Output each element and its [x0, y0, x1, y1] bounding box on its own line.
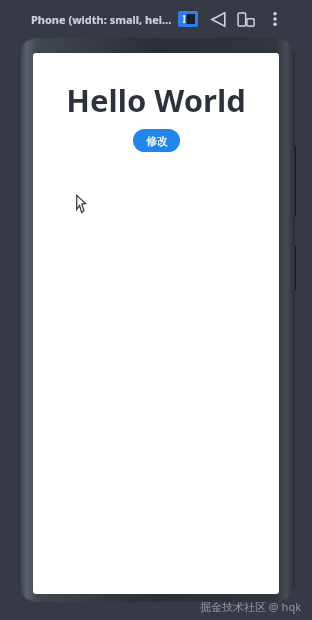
- staticText: 掘金技术社区 @ hqk: [200, 599, 302, 614]
- staticText: Phone (width: small, hei…: [31, 12, 172, 27]
- button[interactable]: Device settings: [234, 7, 258, 31]
- button[interactable]: More options: [265, 9, 285, 29]
- staticText: Hello World: [66, 79, 246, 121]
- button[interactable]: Flip orientation: [207, 8, 229, 30]
- staticText: 修改: [146, 134, 168, 148]
- button[interactable]: 修改: [133, 129, 180, 152]
- button[interactable]: Toggle device frame: [178, 11, 198, 27]
